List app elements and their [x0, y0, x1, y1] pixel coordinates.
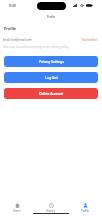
button[interactable]: Delete Account	[4, 88, 98, 99]
button[interactable]: Log Out	[4, 72, 98, 83]
staticText: Profile	[47, 15, 56, 19]
button[interactable]: Profile	[68, 195, 102, 213]
button[interactable]: Home	[0, 195, 34, 213]
staticText: Log Out	[45, 76, 58, 80]
staticText: Your data is handled according to our pr…	[3, 45, 69, 49]
staticText: Email: test@email.com	[3, 38, 32, 42]
staticText: Not Verified	[82, 38, 98, 42]
staticText: History	[46, 209, 56, 213]
button[interactable]: History	[34, 195, 68, 213]
button[interactable]: Privacy Settings	[4, 56, 98, 67]
staticText: Delete Account	[39, 92, 63, 96]
staticText: 9:30	[9, 3, 16, 8]
staticText: Profile	[81, 209, 90, 213]
staticText: Profile	[4, 26, 16, 31]
staticText: Home	[13, 209, 21, 213]
staticText: Privacy Settings	[39, 60, 64, 64]
